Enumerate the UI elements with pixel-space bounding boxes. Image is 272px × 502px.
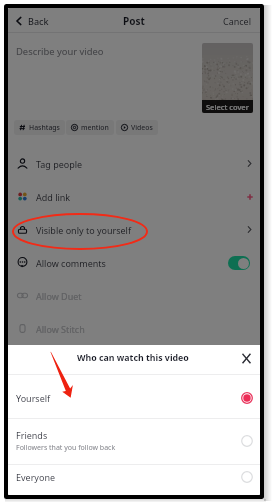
button[interactable]: Close — [240, 352, 253, 365]
staticText: Everyone — [16, 471, 56, 483]
staticText: Describe your video — [16, 45, 104, 58]
staticText: mention — [81, 123, 109, 132]
button[interactable]: Allow comments — [8, 246, 260, 279]
button[interactable]: Tag people — [8, 147, 260, 180]
staticText: Back — [28, 15, 49, 27]
staticText: Hashtags — [29, 123, 60, 132]
button[interactable]: Allow Stitch — [8, 312, 260, 345]
button[interactable]: Back — [8, 12, 53, 30]
staticText: Who can watch this video — [77, 352, 189, 364]
button[interactable]: Everyone — [8, 464, 260, 489]
staticText: Select cover — [206, 102, 249, 112]
staticText: Allow Duet — [36, 290, 82, 302]
staticText: Friends — [16, 429, 48, 441]
button[interactable]: mention — [66, 120, 114, 135]
staticText: Videos — [131, 123, 153, 132]
staticText: Post — [123, 14, 145, 28]
button[interactable]: Select cover — [202, 43, 253, 113]
button[interactable]: Yourself — [8, 378, 260, 417]
button[interactable]: Visible only to yourself — [8, 213, 260, 246]
button[interactable]: Add link — [8, 180, 260, 213]
button[interactable]: Allow comments toggle — [228, 256, 250, 270]
button[interactable]: Hashtags — [14, 120, 65, 135]
staticText: Yourself — [16, 392, 51, 404]
staticText: Visible only to yourself — [36, 224, 132, 236]
staticText: Allow comments — [36, 257, 106, 269]
staticText: Allow Stitch — [36, 323, 85, 335]
button[interactable]: Cancel — [215, 11, 260, 31]
button[interactable]: Allow Duet — [8, 279, 260, 312]
staticText: Add link — [36, 191, 71, 203]
button[interactable]: Videos — [116, 120, 158, 135]
staticText: Followers that you follow back — [16, 443, 116, 453]
staticText: Tag people — [36, 158, 83, 170]
button[interactable]: Friends — [8, 418, 260, 463]
